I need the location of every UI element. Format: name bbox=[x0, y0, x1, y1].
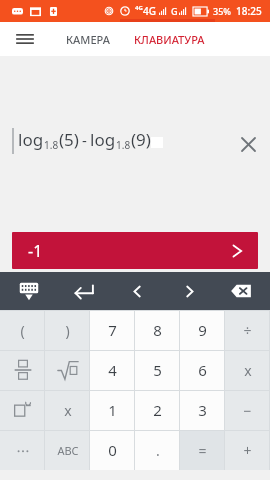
button[interactable]: + bbox=[225, 430, 270, 470]
staticText: log bbox=[90, 128, 116, 151]
button[interactable]: 5 bbox=[135, 350, 180, 390]
button[interactable]: ÷ bbox=[225, 310, 270, 350]
staticText: 8 bbox=[153, 320, 162, 340]
staticText: 2 bbox=[153, 400, 162, 420]
staticText: - bbox=[82, 130, 87, 150]
staticText: КАМЕРА bbox=[66, 32, 110, 47]
button[interactable]: 3 bbox=[180, 390, 225, 430]
button[interactable]: Menu bbox=[10, 24, 40, 54]
staticText: 4G bbox=[135, 4, 143, 12]
button[interactable]: x bbox=[45, 390, 90, 430]
button[interactable]: -1 bbox=[12, 232, 258, 269]
button[interactable]: КАМЕРА bbox=[62, 26, 114, 53]
button[interactable]: ABC bbox=[45, 430, 90, 470]
button[interactable]: 1 bbox=[90, 390, 135, 430]
button[interactable]: 9 bbox=[180, 310, 225, 350]
staticText: 7 bbox=[108, 320, 117, 340]
staticText: x bbox=[244, 361, 252, 380]
staticText: + bbox=[243, 441, 252, 460]
button[interactable]: Backspace bbox=[226, 274, 256, 308]
staticText: = bbox=[198, 441, 207, 460]
staticText: ) bbox=[65, 321, 70, 340]
button[interactable]: . bbox=[135, 430, 180, 470]
staticText: 35% bbox=[213, 5, 231, 17]
button[interactable]: Move right bbox=[176, 274, 202, 308]
button[interactable]: 8 bbox=[135, 310, 180, 350]
button[interactable]: 0 bbox=[90, 430, 135, 470]
button[interactable]: ( bbox=[0, 310, 45, 350]
button[interactable]: 7 bbox=[90, 310, 135, 350]
button[interactable]: 6 bbox=[180, 350, 225, 390]
button[interactable]: FRAC bbox=[0, 350, 45, 390]
button[interactable]: − bbox=[225, 390, 270, 430]
button[interactable]: SQRT bbox=[45, 350, 90, 390]
staticText: 0 bbox=[108, 440, 117, 460]
staticText: 9 bbox=[198, 320, 207, 340]
staticText: 4G bbox=[143, 4, 156, 18]
staticText: G bbox=[171, 5, 178, 17]
button[interactable]: 4 bbox=[90, 350, 135, 390]
staticText: 5 bbox=[153, 360, 162, 380]
staticText: − bbox=[243, 401, 252, 420]
button[interactable]: 2 bbox=[135, 390, 180, 430]
staticText: 18:25 bbox=[236, 4, 262, 18]
staticText: (9) bbox=[131, 128, 151, 151]
button[interactable]: Hide keyboard bbox=[14, 274, 44, 308]
staticText: 1.8 bbox=[44, 138, 59, 152]
button[interactable]: Enter bbox=[68, 274, 98, 308]
staticText: 1 bbox=[108, 400, 117, 420]
button[interactable]: x bbox=[225, 350, 270, 390]
staticText: 1.8 bbox=[116, 138, 131, 152]
button[interactable]: = bbox=[180, 430, 225, 470]
staticText: КЛАВИАТУРА bbox=[134, 32, 205, 47]
staticText: 6 bbox=[198, 360, 207, 380]
staticText: 4 bbox=[108, 360, 117, 380]
staticText: ( bbox=[20, 321, 25, 340]
button[interactable]: КЛАВИАТУРА bbox=[130, 26, 209, 53]
staticText: x bbox=[64, 401, 72, 420]
button[interactable]: DOTS bbox=[0, 430, 45, 470]
button[interactable]: ) bbox=[45, 310, 90, 350]
staticText: log bbox=[18, 128, 44, 151]
staticText: (5) bbox=[59, 128, 79, 151]
staticText: 3 bbox=[198, 400, 207, 420]
button[interactable]: SQ bbox=[0, 390, 45, 430]
staticText: ÷ bbox=[243, 321, 252, 340]
staticText: -1 bbox=[28, 240, 43, 262]
staticText: ABC bbox=[57, 443, 79, 458]
button[interactable]: Clear bbox=[236, 132, 260, 156]
button[interactable]: Move left bbox=[124, 274, 150, 308]
staticText: . bbox=[156, 441, 160, 460]
